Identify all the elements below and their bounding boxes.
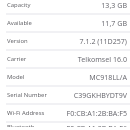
staticText: 7.1.2 (11D257)	[79, 36, 127, 46]
staticText: 11,7 GB	[101, 18, 127, 28]
staticText: Carrier	[7, 55, 27, 63]
staticText: Capacity	[7, 1, 31, 9]
button[interactable]: Carrier	[0, 51, 130, 69]
button[interactable]: Model	[0, 69, 130, 87]
staticText: Serial Number	[7, 91, 47, 99]
staticText: Bluetooth	[7, 123, 35, 127]
button[interactable]: Bluetooth	[0, 123, 130, 127]
staticText: F0:CB:A1:2B:BA:F5	[66, 108, 127, 118]
staticText: F0:CB:A1:2B:BA:F6	[66, 123, 127, 127]
button[interactable]: Wi-Fi Address	[0, 105, 130, 123]
staticText: Telkomsel 16.0	[77, 54, 127, 64]
button[interactable]: Serial Number	[0, 87, 130, 105]
button[interactable]: Available	[0, 15, 130, 33]
staticText: Version	[7, 37, 28, 45]
staticText: Available	[7, 19, 32, 27]
staticText: C39GKHBYDT9V	[73, 90, 127, 100]
staticText: Wi-Fi Address	[7, 109, 45, 117]
button[interactable]: Capacity	[0, 0, 130, 15]
staticText: Model	[7, 73, 25, 81]
button[interactable]: Version	[0, 33, 130, 51]
staticText: 13,3 GB	[101, 0, 127, 10]
staticText: MC918LL/A	[89, 72, 127, 82]
